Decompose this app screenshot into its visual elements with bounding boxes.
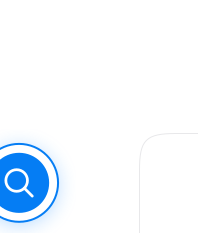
button[interactable]: Search <box>0 143 59 223</box>
